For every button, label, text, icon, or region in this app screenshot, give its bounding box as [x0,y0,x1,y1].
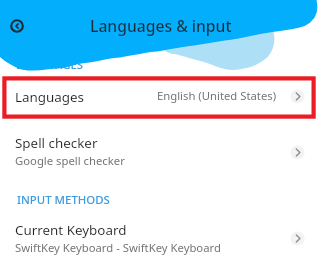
staticText: INPUT METHODS [17,192,110,208]
button[interactable]: Spell checker [0,133,320,167]
staticText: Google spell checker [15,153,125,168]
staticText: LANGUAGES [16,57,84,73]
staticText: English (United States) [157,88,277,103]
button[interactable]: Languages [0,77,320,118]
staticText: Languages & input [90,15,232,36]
staticText: Languages [15,88,85,106]
button[interactable]: Current Keyboard [0,220,320,254]
staticText: SwiftKey Keyboard - SwiftKey Keyboard [15,240,221,255]
staticText: Spell checker [15,134,98,152]
staticText: Current Keyboard [15,221,127,239]
button[interactable]: Back [6,15,28,37]
